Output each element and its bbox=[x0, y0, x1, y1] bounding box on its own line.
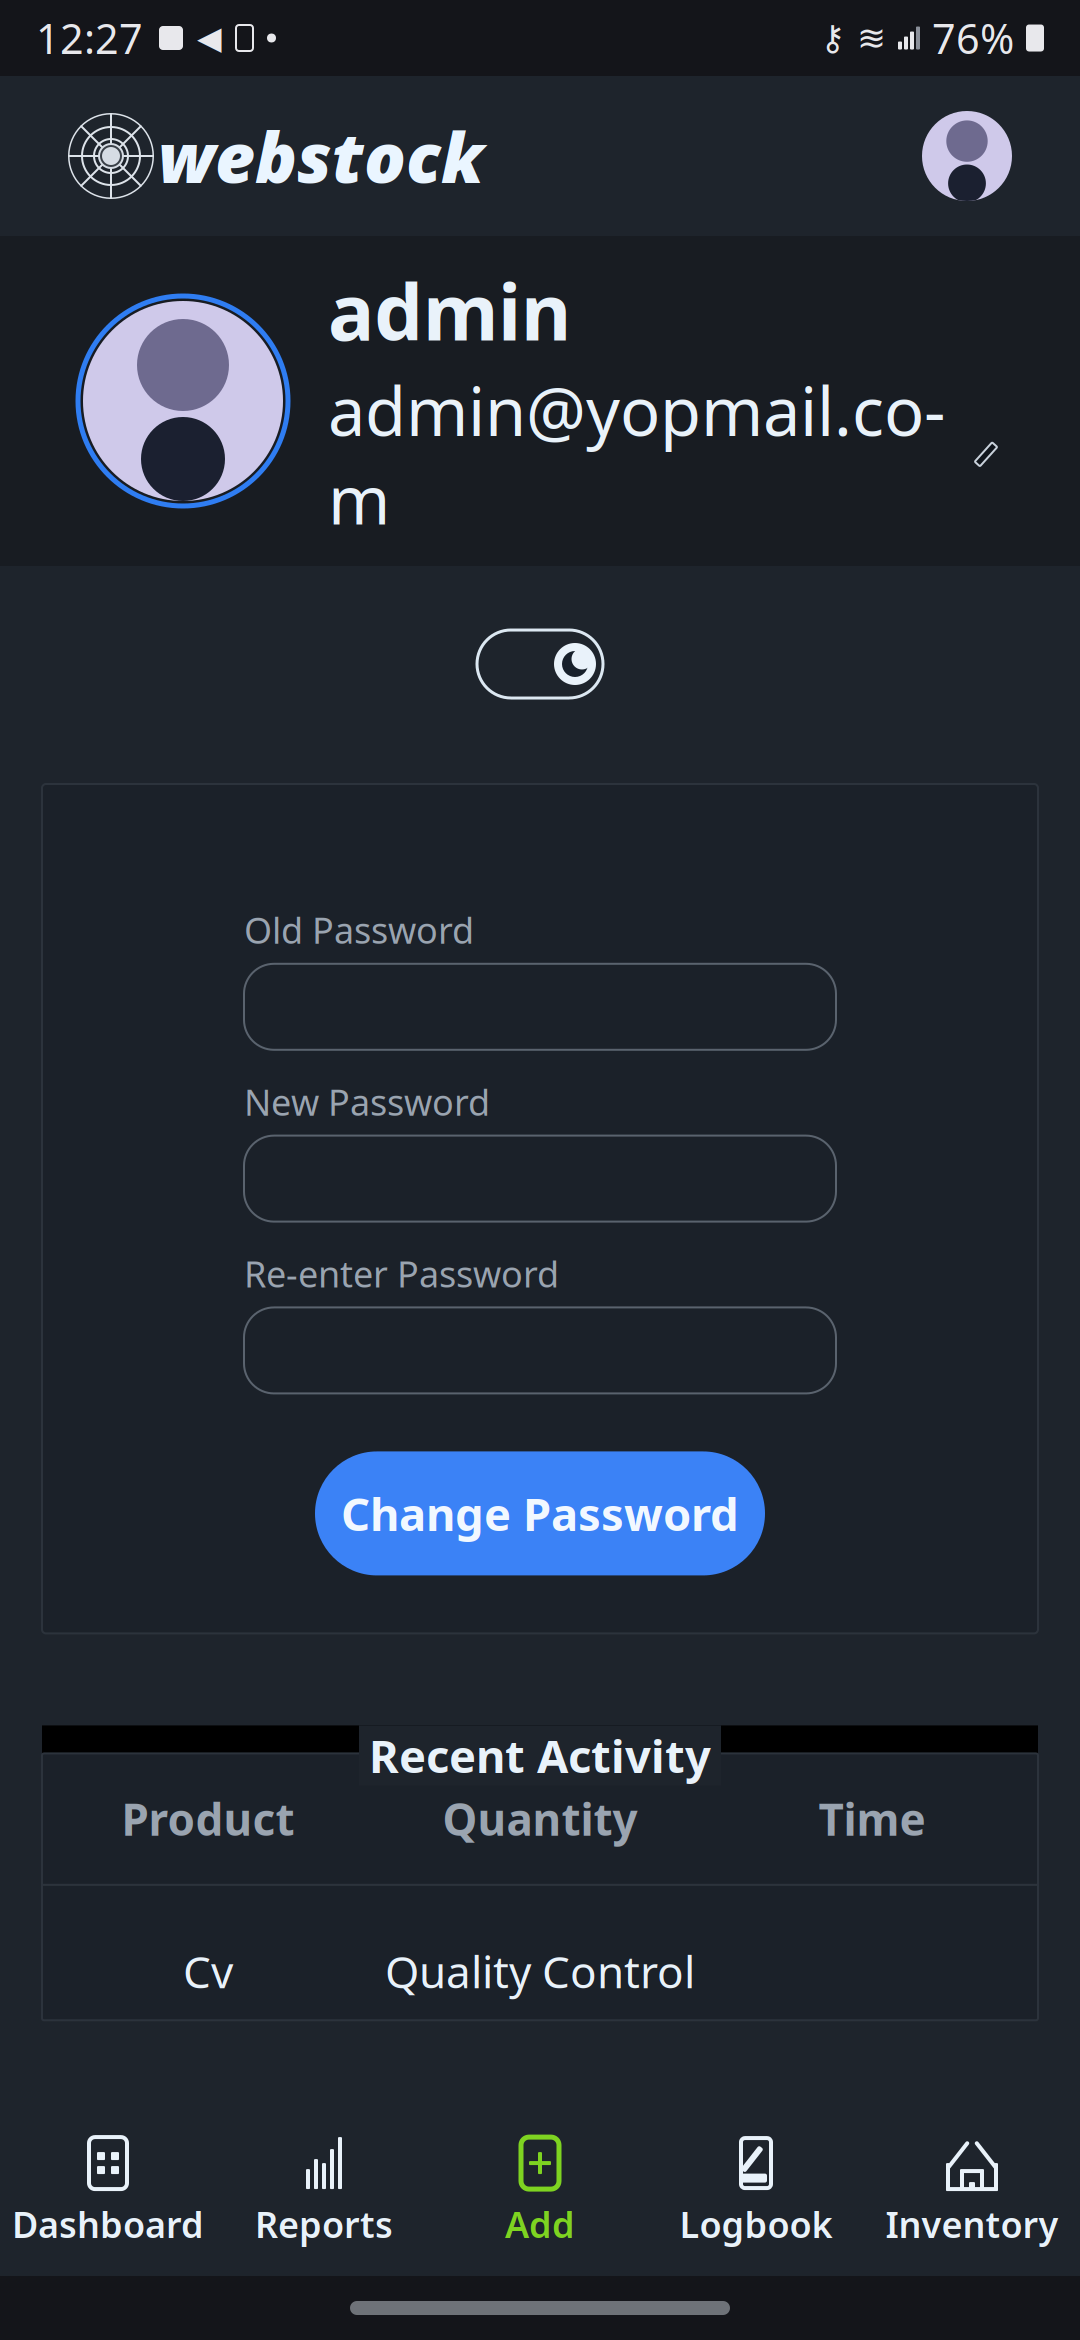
staticText: Product bbox=[121, 1789, 294, 1848]
staticText: Logbook bbox=[679, 2200, 832, 2248]
button[interactable]: Toggle dark mode bbox=[477, 630, 603, 698]
staticText: Re-enter Password bbox=[244, 1250, 559, 1297]
staticText: Recent Activity bbox=[369, 1725, 711, 1786]
button[interactable]: Change Password bbox=[315, 1451, 765, 1575]
staticText: webstock bbox=[158, 110, 484, 202]
staticText: ≋ bbox=[857, 18, 886, 58]
staticText: 76% bbox=[932, 11, 1014, 65]
staticText: Add bbox=[505, 2200, 575, 2248]
staticText: Dashboard bbox=[12, 2200, 204, 2248]
staticText: Quantity bbox=[442, 1789, 637, 1848]
staticText: Reports bbox=[255, 2200, 393, 2248]
button[interactable]: Logbook bbox=[648, 2122, 864, 2262]
staticText: Inventory bbox=[885, 2200, 1058, 2248]
staticText: 12:27 bbox=[36, 11, 143, 65]
button[interactable]: Account bbox=[922, 111, 1012, 201]
staticText: New Password bbox=[244, 1078, 490, 1126]
staticText: Quality Control bbox=[385, 1942, 695, 2000]
staticText: admin bbox=[328, 259, 571, 362]
button[interactable]: Inventory bbox=[864, 2122, 1080, 2262]
staticText: Time bbox=[818, 1789, 925, 1848]
button[interactable]: Add bbox=[432, 2122, 648, 2262]
staticText: Cv bbox=[183, 1942, 233, 2000]
staticText: ◀ bbox=[197, 20, 222, 56]
staticText: Change Password bbox=[341, 1483, 739, 1543]
staticText: ⚷ bbox=[820, 18, 845, 58]
button[interactable]: Dashboard bbox=[0, 2122, 216, 2262]
button[interactable]: Reports bbox=[216, 2122, 432, 2262]
staticText: admin@yopmail.com bbox=[328, 366, 945, 543]
staticText: Old Password bbox=[244, 906, 474, 954]
button[interactable]: Edit profile bbox=[971, 439, 1001, 469]
button[interactable]: webstock bbox=[68, 110, 484, 202]
